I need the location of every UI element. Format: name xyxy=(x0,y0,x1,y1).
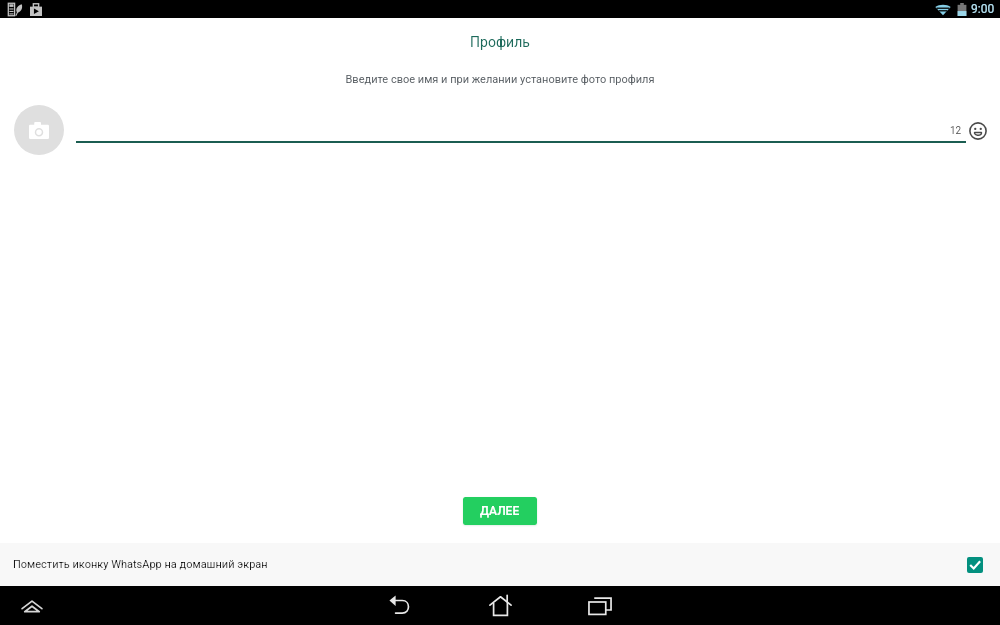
button[interactable]: Add profile photo xyxy=(14,105,64,155)
button[interactable]: Emoji xyxy=(966,119,990,143)
button[interactable]: Expand panel xyxy=(18,592,46,620)
button[interactable]: Back xyxy=(385,591,415,621)
button[interactable]: Поместить иконку WhatsApp на домашний эк… xyxy=(0,543,1000,586)
button[interactable]: Home xyxy=(485,591,515,621)
staticText: Введите свое имя и при желании установит… xyxy=(0,73,1000,86)
staticText: Поместить иконку WhatsApp на домашний эк… xyxy=(13,558,268,571)
button[interactable]: Recent apps xyxy=(585,591,615,621)
staticText: 12 xyxy=(950,125,962,137)
staticText: Профиль xyxy=(0,34,1000,50)
button[interactable]: ДАЛЕЕ xyxy=(463,497,537,525)
staticText: ДАЛЕЕ xyxy=(480,504,520,518)
staticText: 9:00 xyxy=(971,2,995,16)
